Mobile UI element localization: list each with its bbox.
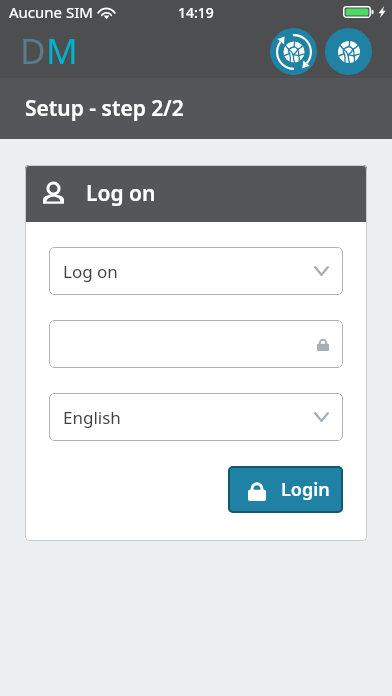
button[interactable]: Synchronise bbox=[270, 28, 317, 75]
button[interactable]: Log on bbox=[25, 165, 367, 222]
staticText: 14:19 bbox=[178, 3, 214, 22]
staticText: Log on bbox=[86, 179, 156, 208]
button[interactable]: Login bbox=[228, 466, 343, 513]
button[interactable]: Log on bbox=[49, 247, 343, 295]
staticText: M bbox=[46, 27, 78, 75]
button[interactable]: English bbox=[49, 393, 343, 441]
staticText: Aucune SIM bbox=[9, 2, 93, 22]
staticText: Log on bbox=[63, 260, 118, 283]
button[interactable]: D bbox=[20, 27, 78, 75]
button[interactable]: Setup - step 2/2 bbox=[0, 78, 392, 139]
button[interactable] bbox=[49, 320, 343, 368]
staticText: Setup - step 2/2 bbox=[25, 94, 184, 123]
staticText: Login bbox=[281, 477, 330, 502]
staticText: English bbox=[63, 406, 121, 429]
button[interactable]: Open web bbox=[325, 28, 372, 75]
staticText: D bbox=[20, 27, 46, 75]
